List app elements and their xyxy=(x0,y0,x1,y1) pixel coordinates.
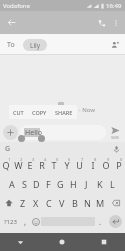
button[interactable]: M xyxy=(94,193,107,212)
button[interactable]: Delete xyxy=(107,193,125,212)
button[interactable]: COPY xyxy=(32,105,47,119)
staticText: Y xyxy=(64,159,70,171)
staticText: A xyxy=(9,178,15,190)
button[interactable]: , xyxy=(20,212,30,231)
staticText: G xyxy=(5,144,11,153)
button[interactable]: Z xyxy=(17,193,29,212)
staticText: SHARE xyxy=(55,109,73,116)
staticText: 8 xyxy=(94,157,97,162)
staticText: 6 xyxy=(68,157,71,162)
button[interactable]: Home xyxy=(41,233,83,251)
staticText: 2 xyxy=(20,157,23,162)
button[interactable]: G xyxy=(54,174,67,193)
staticText: 1 xyxy=(8,157,11,162)
button[interactable]: N xyxy=(81,193,94,212)
button[interactable]: CUT xyxy=(13,105,24,119)
staticText: M xyxy=(96,197,105,209)
button[interactable]: A xyxy=(6,174,18,193)
button[interactable]: Shift xyxy=(0,193,17,212)
staticText: E xyxy=(27,159,33,171)
staticText: Z xyxy=(20,197,26,209)
button[interactable]: More options xyxy=(109,16,122,29)
button[interactable]: Emoji xyxy=(30,212,41,231)
staticText: COPY xyxy=(32,109,47,116)
button[interactable]: P xyxy=(112,155,125,174)
button[interactable]: R xyxy=(36,155,48,174)
button[interactable]: B xyxy=(68,193,81,212)
staticText: N xyxy=(84,197,91,209)
staticText: Vodafone xyxy=(3,2,30,10)
button[interactable]: Send xyxy=(108,126,122,140)
button[interactable]: L xyxy=(106,174,119,193)
staticText: To xyxy=(7,40,15,50)
staticText: 3 xyxy=(32,157,35,162)
button[interactable]: X xyxy=(29,193,42,212)
staticText: F xyxy=(46,178,51,190)
staticText: 7 xyxy=(81,157,84,162)
staticText: 9 xyxy=(107,157,110,162)
button[interactable]: T xyxy=(48,155,60,174)
staticText: Q xyxy=(2,159,10,171)
staticText: SMS xyxy=(111,135,120,140)
button[interactable]: Call xyxy=(94,15,109,30)
staticText: 16:49 xyxy=(106,2,122,10)
staticText: P xyxy=(116,159,122,171)
button[interactable]: C xyxy=(42,193,55,212)
staticText: S xyxy=(22,178,27,190)
staticText: 0 xyxy=(120,157,123,162)
button[interactable]: SHARE xyxy=(55,105,73,119)
staticText: CUT xyxy=(13,109,24,116)
button[interactable]: Enter xyxy=(106,212,125,231)
staticText: H xyxy=(70,178,77,190)
button[interactable]: K xyxy=(93,174,106,193)
staticText: D xyxy=(33,178,40,190)
button[interactable]: ?123 xyxy=(0,212,20,231)
staticText: X xyxy=(33,197,39,209)
button[interactable]: Add recipient xyxy=(108,38,122,52)
button[interactable]: I xyxy=(86,155,99,174)
button[interactable]: Hello xyxy=(20,125,106,140)
button[interactable]: F xyxy=(42,174,54,193)
button[interactable]: E xyxy=(24,155,36,174)
staticText: 5 xyxy=(56,157,59,162)
staticText: . xyxy=(99,216,102,227)
staticText: 4 xyxy=(44,157,47,162)
button[interactable]: Google search xyxy=(3,144,12,153)
button[interactable]: Back xyxy=(4,15,19,30)
button[interactable]: Lily xyxy=(23,39,47,51)
staticText: L xyxy=(110,178,115,190)
staticText: I xyxy=(91,159,95,171)
staticText: K xyxy=(97,178,103,190)
button[interactable]: . xyxy=(95,212,106,231)
button[interactable]: Y xyxy=(60,155,73,174)
button[interactable]: Voice input xyxy=(111,144,121,154)
staticText: Lily xyxy=(30,41,41,50)
staticText: T xyxy=(51,159,57,171)
button[interactable]: V xyxy=(55,193,68,212)
staticText: , xyxy=(24,216,27,227)
staticText: G xyxy=(57,178,64,190)
staticText: Hello xyxy=(25,128,42,138)
staticText: C xyxy=(46,197,52,209)
button[interactable]: W xyxy=(12,155,24,174)
staticText: R xyxy=(39,159,45,171)
button[interactable]: S xyxy=(18,174,30,193)
button[interactable]: U xyxy=(73,155,86,174)
staticText: V xyxy=(59,197,65,209)
staticText: J xyxy=(85,178,88,190)
staticText: O xyxy=(102,159,110,171)
button[interactable]: Add attachment xyxy=(3,125,18,140)
button[interactable]: Recent apps xyxy=(83,233,125,251)
button[interactable]: O xyxy=(99,155,112,174)
button[interactable]: H xyxy=(67,174,80,193)
staticText: W xyxy=(14,159,23,171)
button[interactable]: J xyxy=(80,174,93,193)
button[interactable]: Q xyxy=(0,155,12,174)
button[interactable]: Back xyxy=(0,233,41,251)
button[interactable]: D xyxy=(30,174,42,193)
staticText: U xyxy=(76,159,83,171)
staticText: B xyxy=(72,197,78,209)
staticText: ?123 xyxy=(4,218,17,226)
staticText: · Now xyxy=(79,106,95,114)
